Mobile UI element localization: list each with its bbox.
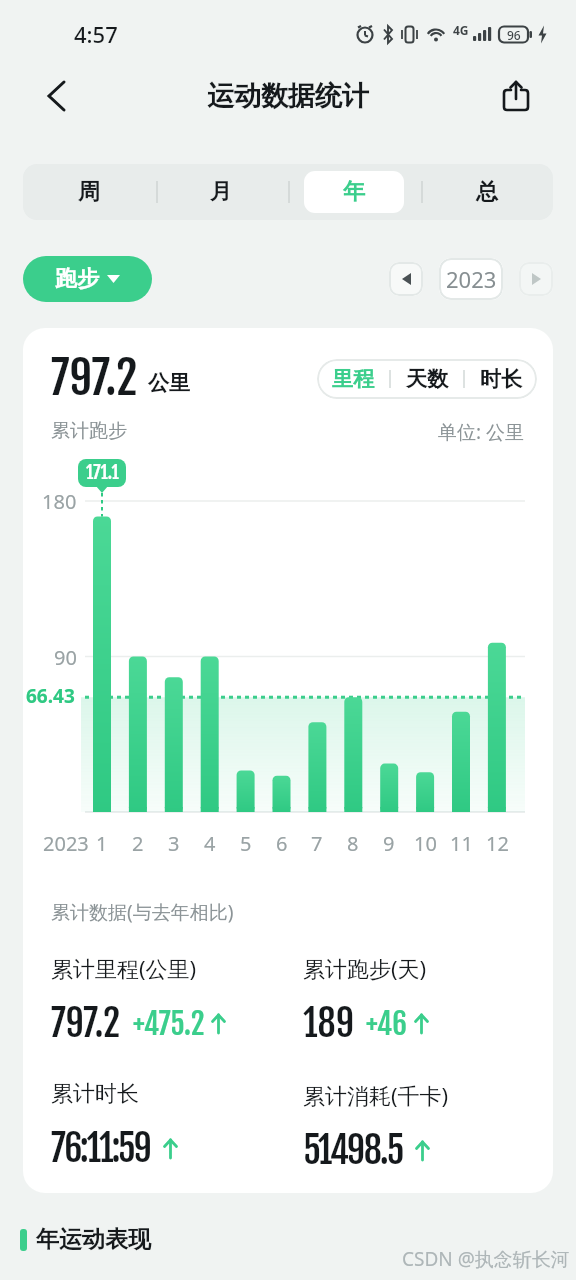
staticText: +46 <box>366 1006 408 1042</box>
staticText: 2023 <box>446 264 497 294</box>
button[interactable]: 2023 <box>439 258 503 300</box>
staticText: 5 <box>240 830 252 857</box>
staticText: 66.43 <box>26 683 75 709</box>
staticText: 月 <box>210 178 232 206</box>
staticText: 797.2 <box>51 1001 121 1046</box>
button[interactable] <box>389 262 423 296</box>
staticText: 天数 <box>406 366 448 392</box>
staticText: CSDN @执念斩长河 <box>402 1246 570 1272</box>
button[interactable]: 月 <box>155 164 287 220</box>
staticText: 171.1 <box>86 461 119 484</box>
staticText: 累计消耗(千卡) <box>303 1080 449 1110</box>
staticText: 2 <box>132 830 144 857</box>
button[interactable]: 跑步 <box>23 256 152 302</box>
button[interactable]: 里程 <box>317 359 389 399</box>
staticText: 189 <box>303 1001 354 1046</box>
staticText: 公里 <box>148 370 190 396</box>
staticText: 7 <box>311 830 323 857</box>
staticText: 6 <box>276 830 288 857</box>
button[interactable]: 总 <box>420 164 553 220</box>
button[interactable]: 时长 <box>465 359 537 399</box>
staticText: 累计时长 <box>51 1080 139 1108</box>
staticText: 51498.5 <box>303 1128 403 1173</box>
staticText: 年 <box>343 178 365 206</box>
button[interactable]: 年 <box>287 164 420 220</box>
staticText: 797.2 <box>51 350 138 407</box>
staticText: 年运动表现 <box>36 1225 151 1254</box>
staticText: 周 <box>78 178 100 206</box>
staticText: 总 <box>476 178 498 206</box>
staticText: 8 <box>347 830 359 857</box>
button[interactable] <box>519 262 553 296</box>
staticText: 累计里程(公里) <box>51 953 197 983</box>
staticText: 时长 <box>480 366 522 392</box>
staticText: 4:57 <box>74 19 118 49</box>
staticText: 11 <box>450 830 473 857</box>
staticText: 10 <box>414 830 437 857</box>
button[interactable] <box>46 80 68 112</box>
staticText: 12 <box>486 830 509 857</box>
staticText: 累计数据(与去年相比) <box>51 899 234 925</box>
staticText: 4 <box>204 830 216 857</box>
staticText: 单位: 公里 <box>438 419 525 445</box>
staticText: 累计跑步(天) <box>303 953 427 983</box>
button[interactable] <box>502 80 530 112</box>
staticText: 跑步 <box>55 265 99 293</box>
staticText: 76:11:59 <box>51 1126 151 1171</box>
staticText: 里程 <box>332 366 374 392</box>
staticText: 9 <box>383 830 395 857</box>
staticText: 1 <box>96 830 108 857</box>
staticText: 累计跑步 <box>51 419 127 443</box>
button[interactable]: 天数 <box>391 359 463 399</box>
staticText: 96 <box>507 27 521 43</box>
staticText: 90 <box>54 644 77 670</box>
staticText: 3 <box>168 830 180 857</box>
staticText: +475.2 <box>133 1006 205 1042</box>
staticText: 4G <box>453 22 469 38</box>
staticText: 180 <box>42 488 77 514</box>
staticText: 2023 <box>43 830 89 857</box>
button[interactable]: 周 <box>23 164 155 220</box>
staticText: 运动数据统计 <box>207 79 369 113</box>
